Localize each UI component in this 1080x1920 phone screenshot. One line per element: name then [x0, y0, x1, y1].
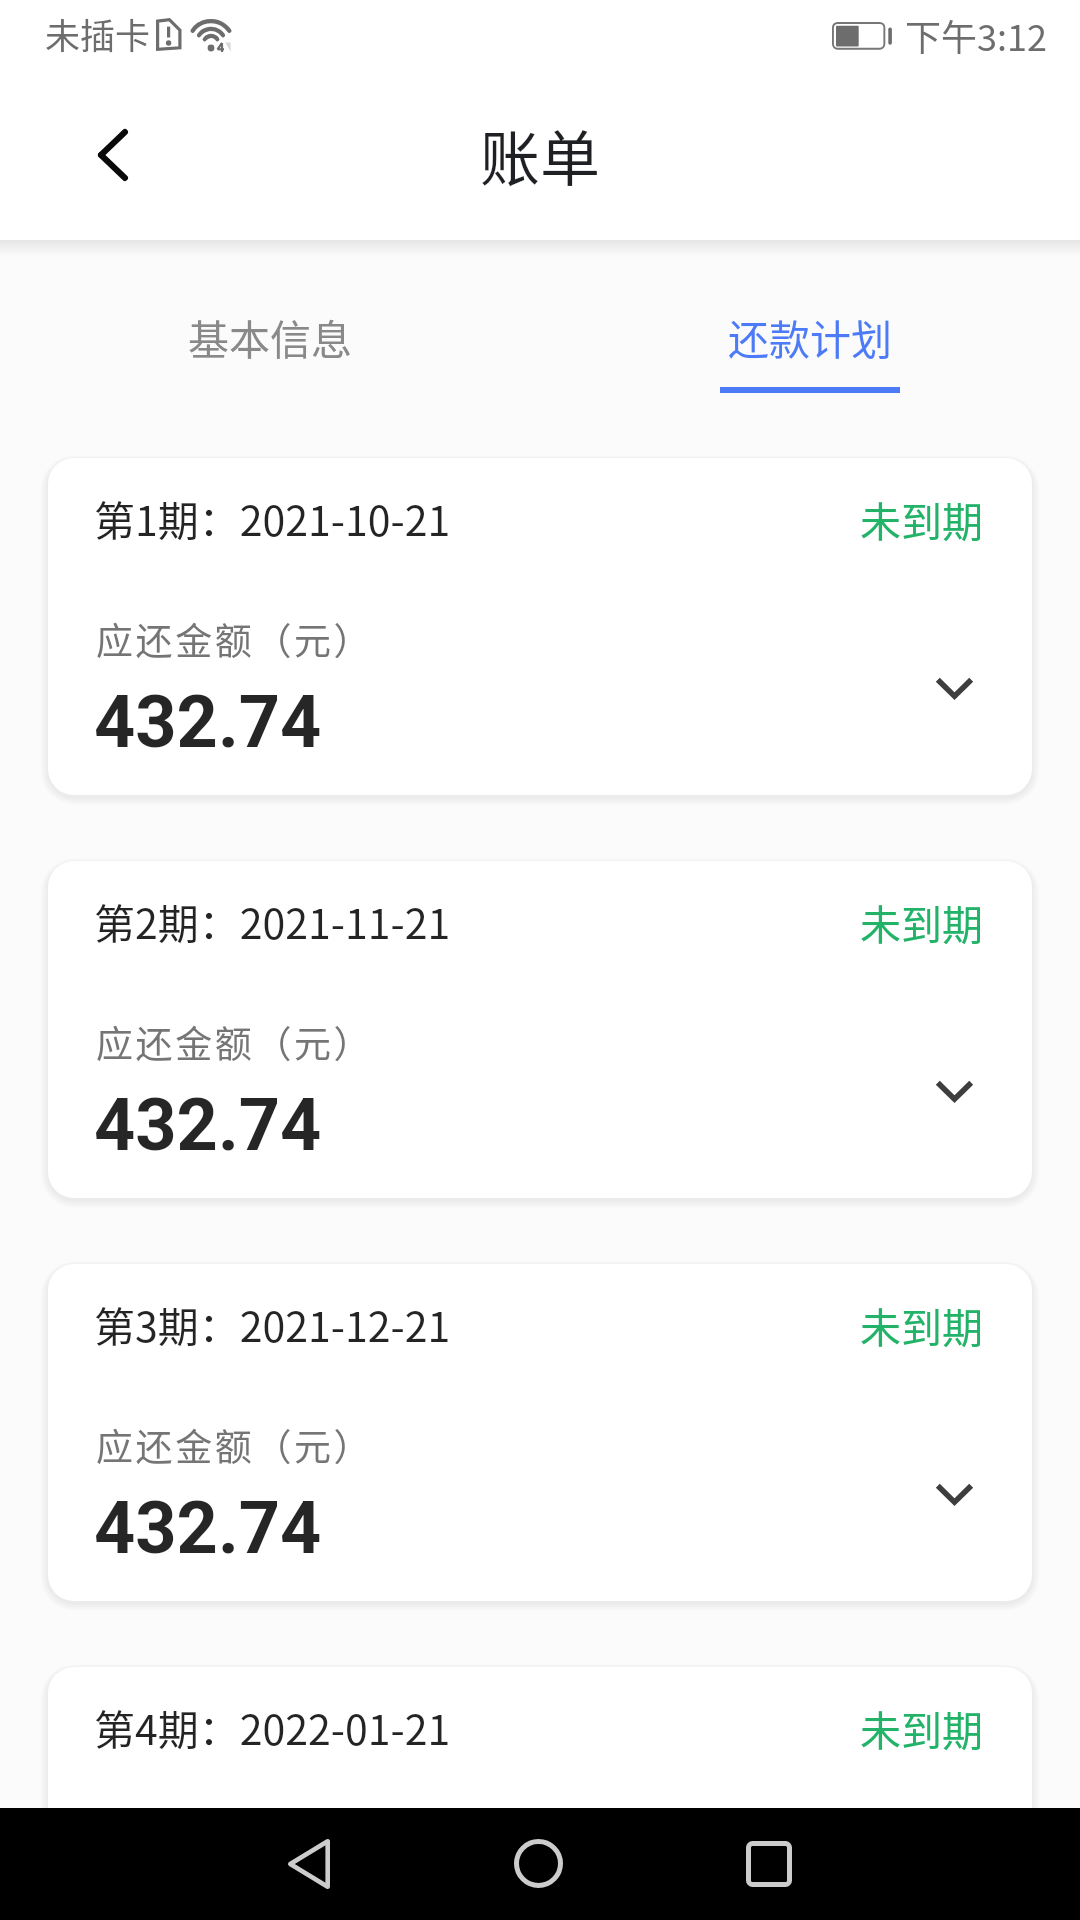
staticText: 下午3:12	[905, 9, 1047, 61]
button[interactable]: Back	[69, 111, 159, 201]
button[interactable]: 第3期：2021-12-21	[48, 1264, 1032, 1601]
staticText: 还款计划	[728, 307, 892, 366]
staticText: 第1期：2021-10-21	[94, 488, 451, 547]
staticText: 432.74	[94, 680, 322, 764]
staticText: 432.74	[94, 1486, 322, 1570]
button[interactable]: 基本信息	[0, 240, 540, 400]
staticText: 未到期	[860, 892, 983, 951]
staticText: 第3期：2021-12-21	[94, 1294, 451, 1353]
button[interactable]: 第2期：2021-11-21	[48, 861, 1032, 1198]
button[interactable]: 还款计划	[540, 240, 1080, 400]
button[interactable]: Expand	[914, 1051, 994, 1131]
button[interactable]: Home	[484, 1808, 594, 1918]
staticText: 第2期：2021-11-21	[94, 891, 451, 950]
staticText: 基本信息	[188, 307, 352, 366]
staticText: 应还金额（元）	[96, 1821, 374, 1875]
staticText: 未到期	[860, 1295, 983, 1354]
button[interactable]: 第4期：2022-01-21	[48, 1667, 1032, 1920]
staticText: 账单	[480, 111, 600, 198]
staticText: 432.74	[94, 1083, 322, 1167]
staticText: 未到期	[860, 489, 983, 548]
staticText: 未插卡	[45, 8, 151, 59]
staticText: 第4期：2022-01-21	[94, 1697, 451, 1756]
staticText: 应还金额（元）	[96, 1418, 374, 1472]
button[interactable]: Expand	[914, 648, 994, 728]
staticText: 应还金额（元）	[96, 1015, 374, 1069]
button[interactable]: Back	[253, 1808, 363, 1918]
button[interactable]: Expand	[914, 1454, 994, 1534]
button[interactable]: Recents	[714, 1808, 824, 1918]
staticText: 应还金额（元）	[96, 612, 374, 666]
button[interactable]: 第1期：2021-10-21	[48, 458, 1032, 795]
staticText: 未到期	[860, 1698, 983, 1757]
